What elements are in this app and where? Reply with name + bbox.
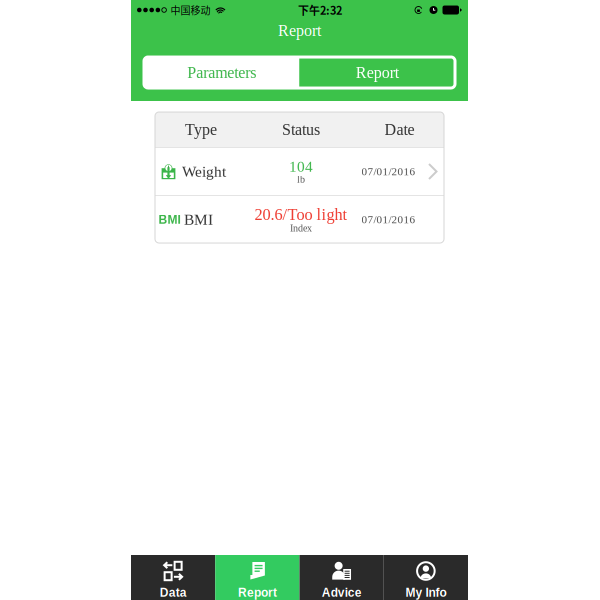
- staticText: 07/01/2016: [361, 165, 415, 178]
- staticText: Report: [238, 586, 277, 599]
- staticText: BMI: [158, 213, 180, 226]
- staticText: 07/01/2016: [361, 213, 415, 226]
- staticText: Weight: [182, 163, 226, 180]
- staticText: 下午2:32: [298, 2, 342, 18]
- button[interactable]: Report: [299, 57, 455, 88]
- button[interactable]: Parameters: [144, 57, 299, 88]
- staticText: 104: [289, 158, 313, 175]
- staticText: Type: [185, 121, 217, 138]
- button[interactable]: Weight: [155, 148, 444, 195]
- staticText: 中国移动: [170, 3, 210, 17]
- button[interactable]: Advice: [299, 555, 384, 600]
- staticText: My Info: [405, 586, 446, 599]
- button[interactable]: Report: [215, 555, 299, 600]
- button[interactable]: Data: [131, 555, 215, 600]
- button[interactable]: My Info: [384, 555, 468, 600]
- staticText: 20.6/Too light: [254, 205, 347, 223]
- staticText: lb: [297, 174, 305, 185]
- staticText: BMI: [184, 211, 213, 228]
- staticText: Data: [160, 586, 187, 599]
- button[interactable]: BMI: [155, 196, 444, 243]
- staticText: Advice: [322, 586, 362, 599]
- staticText: Date: [384, 121, 414, 138]
- staticText: Parameters: [187, 64, 256, 81]
- staticText: Index: [290, 222, 312, 234]
- staticText: Report: [356, 64, 399, 81]
- staticText: Status: [282, 121, 320, 138]
- staticText: Report: [278, 22, 321, 39]
